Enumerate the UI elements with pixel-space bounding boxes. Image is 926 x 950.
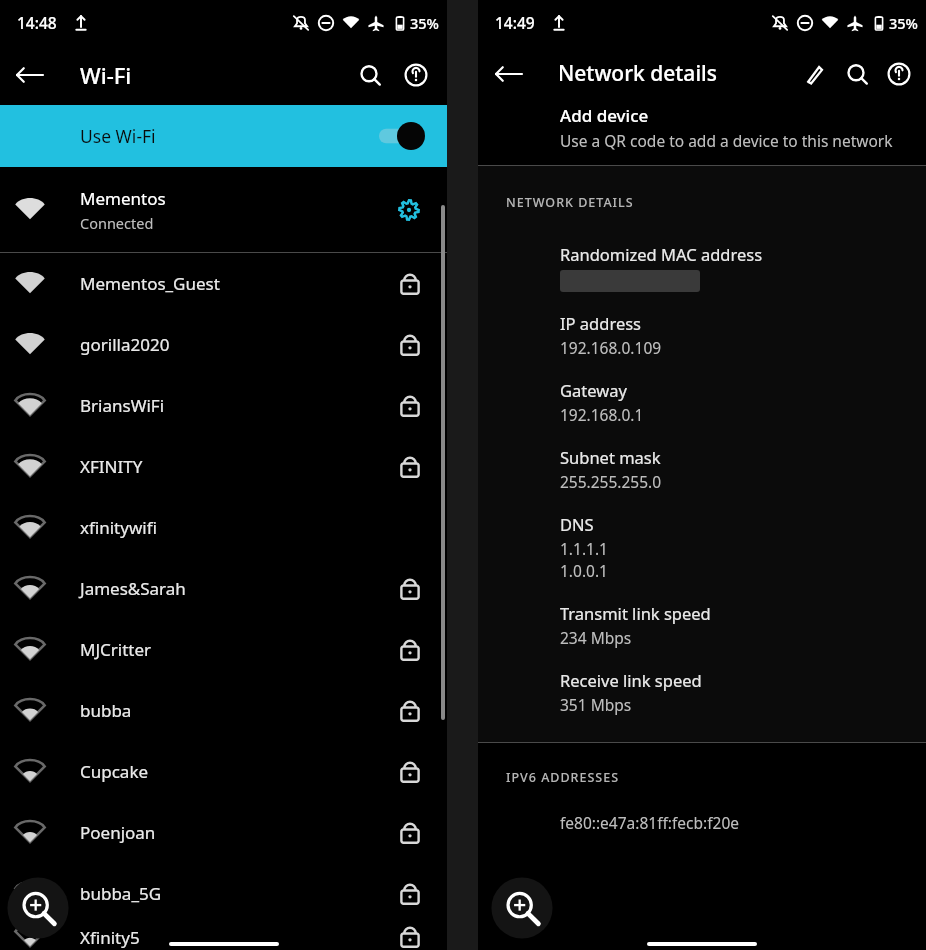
button[interactable]: Back (486, 51, 532, 97)
button[interactable]: Back (6, 51, 54, 99)
staticText: 14:48 (17, 12, 57, 33)
staticText: NETWORK DETAILS (506, 194, 634, 211)
button[interactable]: Help (878, 53, 920, 95)
staticText: Poenjoan (80, 821, 156, 844)
staticText: Cupcake (80, 760, 149, 783)
staticText: Gateway (560, 379, 627, 401)
button[interactable]: Poenjoan (0, 802, 447, 863)
staticText: XFINITY (80, 455, 143, 478)
staticText: Mementos (80, 187, 166, 210)
button[interactable]: gorilla2020 (0, 314, 447, 375)
staticText: xfinitywifi (80, 516, 157, 539)
button[interactable]: xfinitywifi (0, 497, 447, 558)
button[interactable]: Use Wi-Fi (0, 105, 447, 167)
staticText: Add device (560, 104, 649, 127)
staticText: Connected (80, 213, 154, 233)
staticText: 351 Mbps (560, 694, 632, 715)
button[interactable]: XFINITY (0, 436, 447, 497)
staticText: Subnet mask (560, 446, 661, 468)
staticText: gorilla2020 (80, 333, 170, 356)
staticText: bubba_5G (80, 882, 162, 905)
button[interactable]: Help (393, 52, 439, 98)
staticText: 35% (410, 13, 439, 33)
staticText: 1.0.0.1 (560, 560, 608, 581)
staticText: Receive link speed (560, 669, 702, 691)
button[interactable]: bubba (0, 680, 447, 741)
button[interactable]: Mementos (0, 167, 447, 252)
button[interactable]: bubba_5G (0, 863, 447, 924)
button[interactable]: Add device (478, 102, 926, 165)
staticText: Use Wi-Fi (80, 124, 156, 148)
button[interactable]: Network settings (389, 190, 429, 230)
button[interactable]: Search (347, 52, 393, 98)
staticText: Wi-Fi (80, 60, 132, 90)
staticText: 234 Mbps (560, 627, 632, 648)
staticText: 255.255.255.0 (560, 471, 662, 492)
staticText: MJCritter (80, 638, 152, 661)
staticText: Network details (558, 59, 717, 88)
staticText: Transmit link speed (560, 602, 711, 624)
button[interactable]: James&Sarah (0, 558, 447, 619)
staticText: 192.168.0.1 (560, 404, 644, 425)
button[interactable]: Xfinity5 (0, 924, 447, 950)
staticText: fe80::e47a:81ff:fecb:f20e (560, 812, 739, 833)
staticText: 35% (889, 13, 918, 33)
button[interactable]: Mementos_Guest (0, 253, 447, 314)
staticText: 192.168.0.109 (560, 337, 662, 358)
staticText: bubba (80, 699, 132, 722)
staticText: James&Sarah (80, 577, 186, 600)
staticText: DNS (560, 513, 594, 535)
button[interactable]: Cupcake (0, 741, 447, 802)
staticText: Randomized MAC address (560, 243, 763, 265)
staticText: Mementos_Guest (80, 272, 220, 295)
button[interactable]: Edit (794, 53, 836, 95)
staticText: IPV6 ADDRESSES (506, 769, 620, 786)
button[interactable]: MJCritter (0, 619, 447, 680)
button[interactable]: BriansWiFi (0, 375, 447, 436)
staticText: 14:49 (495, 12, 535, 33)
staticText: IP address (560, 312, 642, 334)
button[interactable]: Search (836, 53, 878, 95)
staticText: BriansWiFi (80, 394, 165, 417)
staticText: Use a QR code to add a device to this ne… (560, 130, 893, 151)
staticText: Xfinity5 (80, 926, 140, 949)
staticText: 1.1.1.1 (560, 538, 608, 559)
